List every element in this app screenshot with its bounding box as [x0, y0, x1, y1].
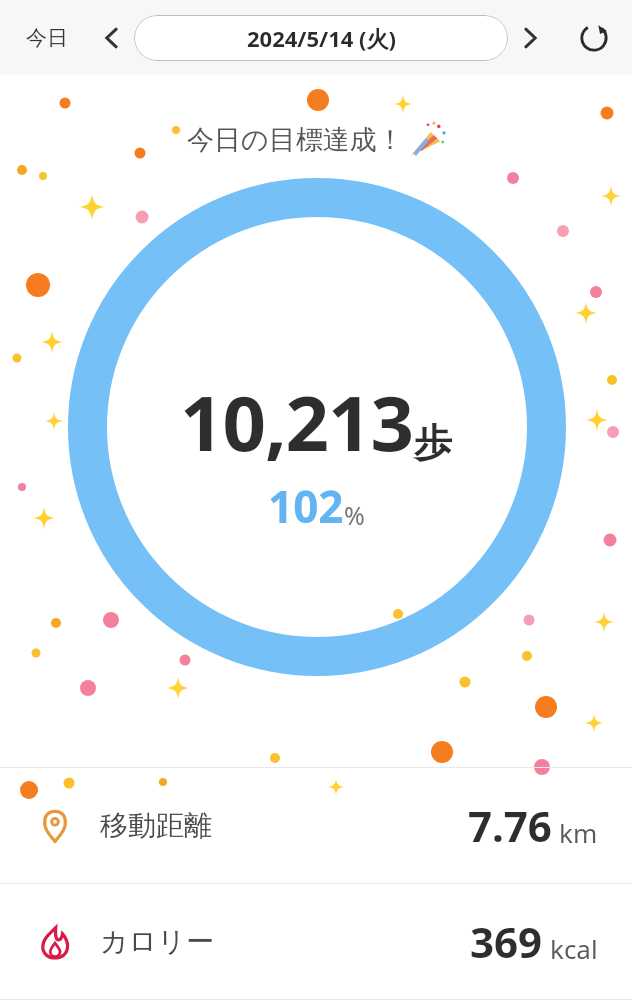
staticText: 7.76 — [468, 797, 552, 854]
staticText: 移動距離 — [100, 808, 212, 843]
button[interactable]: 2024/5/14 (火) — [134, 15, 508, 61]
button[interactable]: Next day — [508, 16, 552, 60]
staticText: km — [559, 815, 598, 850]
button[interactable]: カロリー — [0, 884, 632, 999]
button[interactable]: Previous day — [90, 16, 134, 60]
staticText: 今日の目標達成！ — [187, 123, 404, 157]
staticText: 歩 — [414, 419, 452, 467]
staticText: 2024/5/14 (火) — [247, 23, 396, 53]
staticText: 102 — [268, 476, 344, 536]
staticText: 今日 — [26, 25, 68, 51]
staticText: カロリー — [100, 924, 214, 959]
staticText: kcal — [550, 931, 598, 966]
button[interactable]: 今日 — [14, 17, 80, 59]
staticText: 369 — [470, 913, 543, 970]
button[interactable]: 移動距離 — [0, 768, 632, 883]
button[interactable]: Refresh — [570, 14, 618, 62]
staticText: % — [344, 498, 365, 532]
staticText: 10,213 — [180, 370, 414, 474]
